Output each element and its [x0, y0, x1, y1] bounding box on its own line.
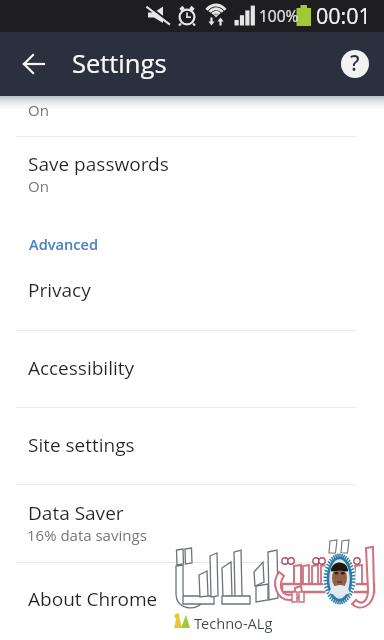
- button[interactable]: [0, 331, 384, 407]
- staticText: Site settings: [28, 432, 135, 458]
- button[interactable]: Navigate up: [10, 40, 58, 88]
- staticText: On: [28, 176, 49, 196]
- staticText: Settings: [72, 46, 167, 81]
- staticText: Advanced: [29, 234, 99, 254]
- staticText: 16% data savings: [27, 525, 147, 545]
- staticText: Data Saver: [28, 500, 124, 526]
- button[interactable]: [0, 137, 384, 207]
- button[interactable]: Help: [340, 49, 370, 79]
- button[interactable]: [0, 408, 384, 484]
- staticText: Accessibility: [28, 355, 135, 381]
- staticText: 100%: [259, 5, 299, 26]
- button[interactable]: [0, 563, 384, 640]
- button[interactable]: [0, 259, 384, 330]
- staticText: Privacy: [28, 277, 91, 303]
- staticText: ?: [350, 49, 360, 78]
- staticText: Techno-ALg: [194, 613, 273, 633]
- button[interactable]: [0, 485, 384, 562]
- staticText: 00:01: [316, 1, 371, 30]
- staticText: On: [28, 100, 49, 120]
- staticText: Save passwords: [28, 151, 169, 177]
- staticText: About Chrome: [28, 586, 158, 612]
